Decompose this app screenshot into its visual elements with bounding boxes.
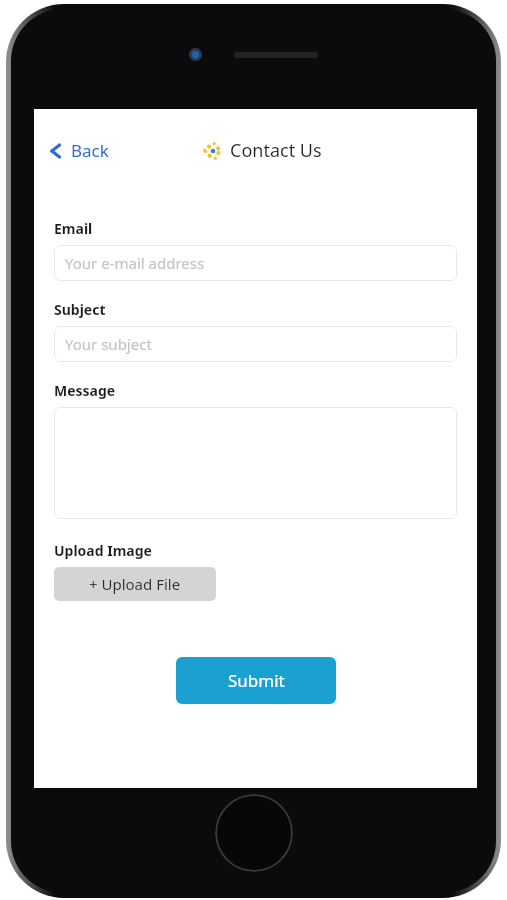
staticText: Your e-mail address bbox=[65, 253, 205, 273]
button[interactable]: Submit bbox=[176, 657, 336, 704]
staticText: Submit bbox=[228, 669, 285, 692]
button[interactable]: Back bbox=[42, 133, 115, 168]
button[interactable]: + Upload File bbox=[54, 567, 216, 601]
button[interactable]: Your e-mail address bbox=[54, 245, 457, 281]
button[interactable]: Home bbox=[215, 794, 293, 872]
staticText: Subject bbox=[54, 300, 106, 319]
staticText: Message bbox=[54, 381, 116, 400]
staticText: Back bbox=[71, 139, 109, 162]
button[interactable] bbox=[54, 407, 457, 519]
staticText: + Upload File bbox=[89, 574, 181, 594]
staticText: Your subject bbox=[65, 334, 152, 354]
staticText: Contact Us bbox=[230, 138, 322, 163]
staticText: Upload Image bbox=[54, 541, 152, 560]
staticText: Email bbox=[54, 219, 93, 238]
button[interactable]: Your subject bbox=[54, 326, 457, 362]
